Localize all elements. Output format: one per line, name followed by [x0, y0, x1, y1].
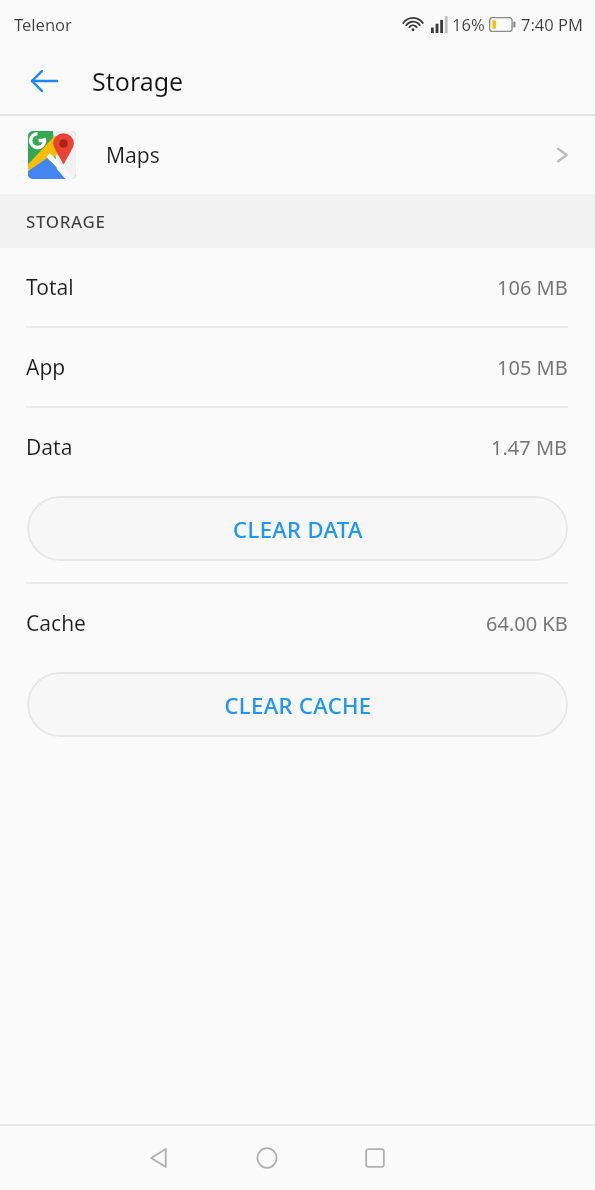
staticText: 106 MB [497, 274, 568, 301]
staticText: Total [26, 273, 74, 302]
staticText: Storage [92, 64, 184, 98]
button[interactable]: Total [0, 248, 595, 326]
staticText: Maps [106, 141, 160, 170]
button[interactable]: CLEAR CACHE [27, 672, 568, 737]
staticText: Telenor [14, 13, 72, 35]
staticText: 1.47 MB [491, 434, 568, 461]
staticText: 16% [452, 13, 485, 35]
staticText: 64.00 KB [486, 610, 568, 637]
button[interactable]: Home [238, 1129, 296, 1187]
staticText: Cache [26, 609, 86, 638]
button[interactable]: Back [14, 51, 74, 111]
staticText: STORAGE [26, 210, 106, 233]
button[interactable]: Cache [0, 584, 595, 662]
staticText: 105 MB [497, 354, 568, 381]
button[interactable]: CLEAR DATA [27, 496, 568, 561]
button[interactable]: App [0, 328, 595, 406]
staticText: Data [26, 433, 73, 462]
button[interactable]: Data [0, 408, 595, 486]
staticText: 7:40 PM [521, 13, 583, 35]
button[interactable]: Back [130, 1129, 188, 1187]
staticText: App [26, 353, 66, 382]
button[interactable]: Recent apps [346, 1129, 404, 1187]
button[interactable]: Maps [0, 116, 595, 194]
staticText: CLEAR DATA [233, 514, 363, 544]
staticText: CLEAR CACHE [224, 690, 372, 720]
